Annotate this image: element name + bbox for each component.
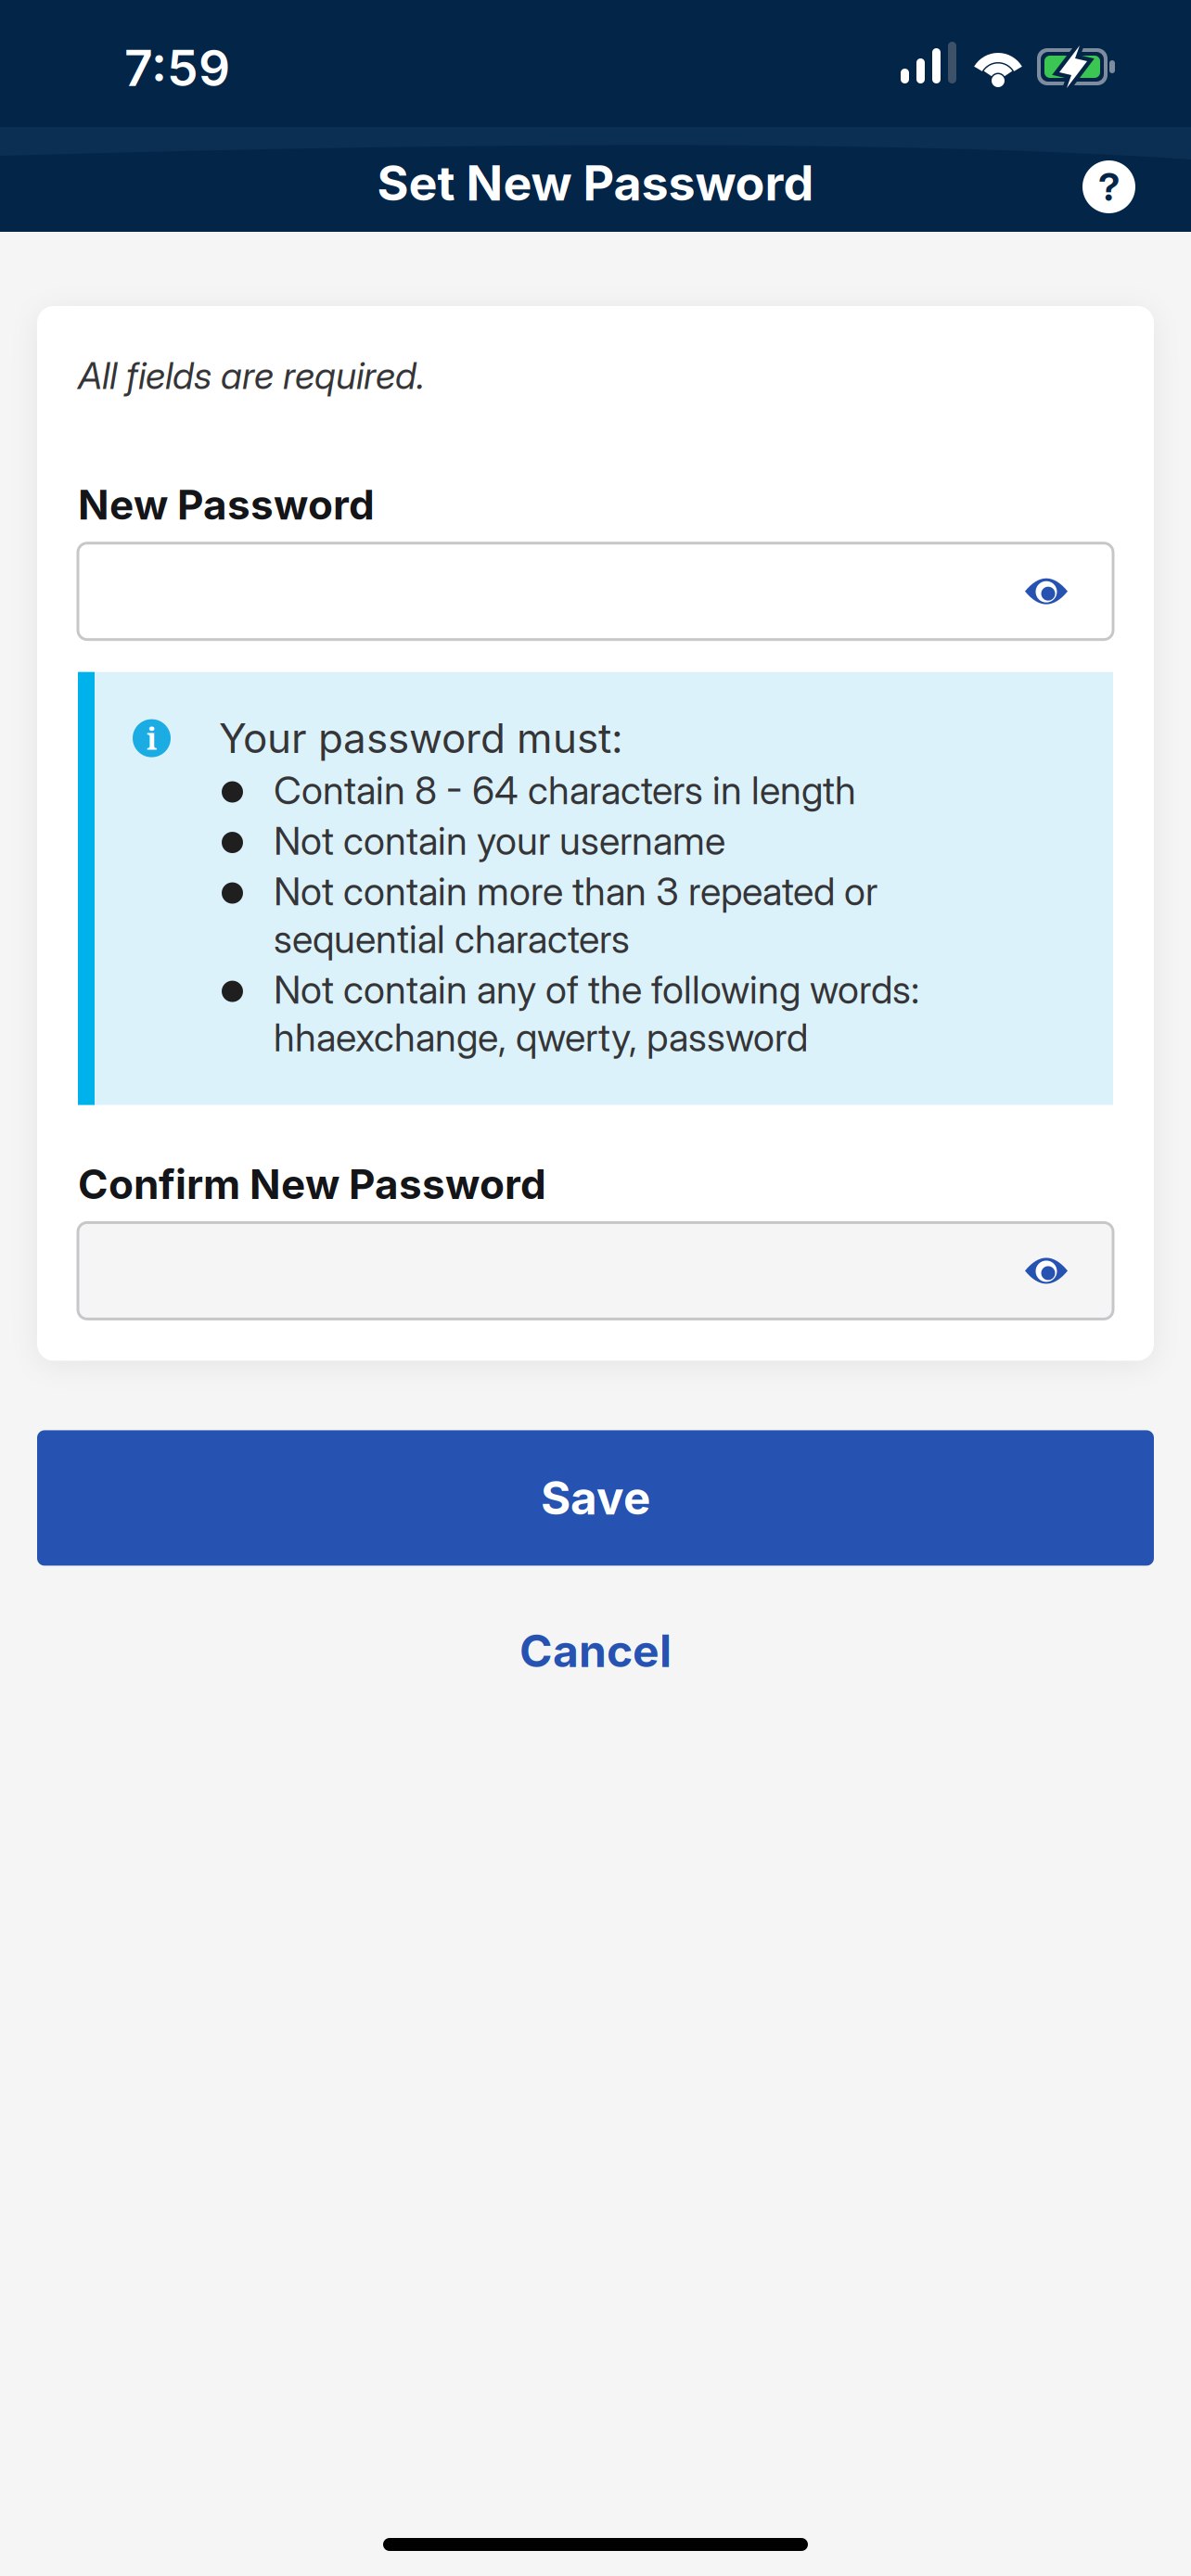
button[interactable]: Show password (1025, 1255, 1113, 1287)
staticText: Confirm New Password (78, 1159, 546, 1210)
staticText: Contain 8 - 64 characters in length (274, 766, 856, 814)
staticText: Not contain your username (274, 817, 725, 865)
button[interactable]: Save (37, 1430, 1154, 1566)
button[interactable]: Show password (1025, 576, 1113, 607)
staticText: 7:59 (124, 37, 230, 99)
staticText: New Password (78, 479, 375, 530)
staticText: Not contain any of the following words: … (274, 966, 919, 1061)
staticText: i (147, 718, 157, 758)
staticText: Set New Password (377, 153, 814, 213)
staticText: All fields are required. (78, 352, 425, 399)
staticText: Your password must: (219, 713, 623, 764)
staticText: ? (1098, 163, 1120, 211)
staticText: Cancel (519, 1623, 672, 1679)
staticText: Save (541, 1469, 650, 1526)
button[interactable]: Cancel (519, 1623, 672, 1679)
staticText: Not contain more than 3 repeated or sequ… (274, 867, 877, 963)
button[interactable]: Help (1082, 160, 1135, 213)
